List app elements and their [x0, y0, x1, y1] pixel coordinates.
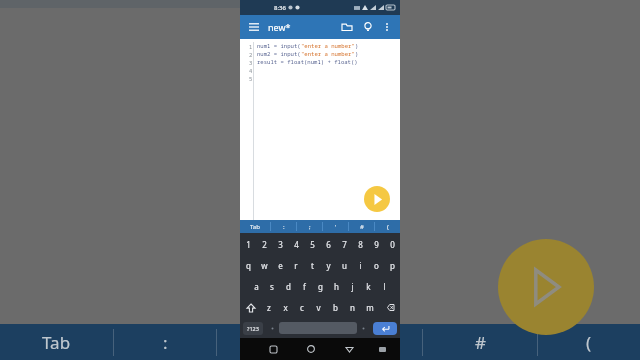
button[interactable]: Hide keyboard: [375, 342, 389, 356]
button[interactable]: Menu: [246, 19, 262, 35]
button[interactable]: 9: [368, 233, 384, 255]
button[interactable]: 5: [304, 233, 320, 255]
button[interactable]: o: [368, 255, 384, 276]
staticText: #: [475, 331, 486, 354]
button[interactable]: p: [384, 255, 400, 276]
button[interactable]: v: [310, 297, 327, 318]
staticText: 2: [249, 51, 253, 58]
staticText: 9: [374, 239, 379, 250]
button[interactable]: More options: [379, 19, 395, 35]
button[interactable]: Open folder: [338, 18, 356, 36]
button[interactable]: 0: [384, 233, 400, 255]
staticText: result = float(num1) + float(): [257, 58, 358, 66]
staticText: Tab: [42, 331, 71, 354]
button[interactable]: b: [327, 297, 344, 318]
button[interactable]: 2: [256, 233, 272, 255]
button[interactable]: Home: [303, 341, 319, 357]
button[interactable]: #: [349, 220, 374, 233]
staticText: c: [300, 302, 304, 313]
staticText: p: [390, 260, 395, 271]
button[interactable]: k: [360, 276, 376, 297]
staticText: g: [318, 281, 323, 292]
staticText: 1: [246, 239, 251, 250]
button[interactable]: j: [344, 276, 360, 297]
staticText: e: [278, 260, 283, 271]
button[interactable]: 4: [288, 233, 304, 255]
staticText: 1: [249, 43, 253, 50]
button[interactable]: c: [293, 297, 310, 318]
button[interactable]: 1: [240, 233, 256, 255]
staticText: ;: [309, 223, 311, 231]
button[interactable]: d: [280, 276, 296, 297]
staticText: r: [294, 260, 298, 271]
button[interactable]: (: [375, 220, 400, 233]
button[interactable]: Back: [341, 341, 357, 357]
staticText: ;: [266, 331, 271, 354]
button[interactable]: Run: [364, 186, 390, 212]
button[interactable]: Tab: [240, 220, 270, 233]
button[interactable]: y: [320, 255, 336, 276]
button[interactable]: ?123: [243, 322, 263, 335]
button[interactable]: u: [336, 255, 352, 276]
staticText: l: [383, 281, 386, 292]
button[interactable]: :: [271, 220, 296, 233]
button[interactable]: 7: [336, 233, 352, 255]
button[interactable]: t: [304, 255, 320, 276]
staticText: 5: [310, 239, 315, 250]
staticText: (: [387, 223, 389, 231]
button[interactable]: Enter: [373, 322, 397, 335]
staticText: w: [261, 260, 268, 271]
staticText: u: [342, 260, 347, 271]
button[interactable]: s: [264, 276, 280, 297]
button[interactable]: w: [256, 255, 272, 276]
button[interactable]: 6: [320, 233, 336, 255]
button[interactable]: m: [361, 297, 378, 318]
staticText: h: [334, 281, 339, 292]
staticText: d: [286, 281, 291, 292]
button[interactable]: a: [248, 276, 264, 297]
button[interactable]: x: [277, 297, 293, 318]
staticText: 5: [249, 75, 253, 82]
staticText: i: [359, 260, 362, 271]
staticText: "enter a number": [301, 50, 355, 58]
staticText: a: [254, 281, 259, 292]
button[interactable]: ;: [297, 220, 322, 233]
staticText: m: [366, 302, 374, 313]
staticText: Tab: [250, 223, 260, 231]
button[interactable]: i: [352, 255, 368, 276]
button[interactable]: ': [323, 220, 348, 233]
button[interactable]: 3: [272, 233, 288, 255]
button[interactable]: Space: [279, 322, 357, 334]
button[interactable]: 8: [352, 233, 368, 255]
staticText: 3: [249, 59, 253, 66]
staticText: z: [267, 302, 271, 313]
staticText: 7: [342, 239, 347, 250]
staticText: b: [333, 302, 338, 313]
staticText: 4: [249, 67, 253, 74]
staticText: y: [326, 260, 331, 271]
button[interactable]: Recents: [265, 341, 281, 357]
staticText: ': [335, 223, 337, 231]
button[interactable]: h: [328, 276, 344, 297]
button[interactable]: g: [312, 276, 328, 297]
button[interactable]: Shift: [240, 297, 261, 318]
staticText: q: [246, 260, 251, 271]
button[interactable]: e: [272, 255, 288, 276]
staticText: n: [350, 302, 355, 313]
button[interactable]: l: [376, 276, 392, 297]
staticText: 0: [390, 239, 395, 250]
button[interactable]: f: [296, 276, 312, 297]
button[interactable]: Hint: [359, 18, 377, 36]
staticText: num2 = input(: [257, 50, 301, 58]
staticText: s: [270, 281, 274, 292]
staticText: :: [163, 331, 168, 354]
staticText: o: [374, 260, 379, 271]
staticText: t: [311, 260, 314, 271]
button[interactable]: Backspace: [378, 297, 400, 318]
button[interactable]: n: [344, 297, 361, 318]
button[interactable]: q: [240, 255, 256, 276]
staticText: 2: [262, 239, 267, 250]
staticText: (: [586, 331, 592, 354]
button[interactable]: r: [288, 255, 304, 276]
button[interactable]: z: [261, 297, 277, 318]
